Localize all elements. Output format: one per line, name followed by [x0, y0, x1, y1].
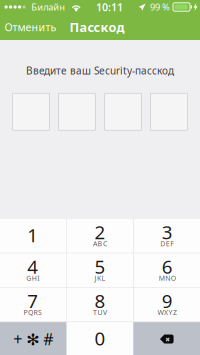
staticText: GHI: [26, 273, 39, 282]
staticText: 9: [162, 288, 173, 313]
staticText: 0: [94, 326, 105, 351]
staticText: 3: [162, 220, 173, 244]
staticText: PQRS: [23, 308, 42, 317]
staticText: 5: [94, 254, 105, 279]
button[interactable]: Отменить: [0, 15, 68, 39]
staticText: 4: [27, 254, 38, 279]
staticText: 10:11: [96, 0, 123, 14]
button[interactable]: 5: [67, 253, 133, 287]
button[interactable]: 7: [0, 288, 66, 322]
button[interactable]: Delete: [133, 322, 200, 355]
staticText: + ✻ #: [13, 328, 53, 350]
staticText: 7: [27, 288, 38, 313]
staticText: 2: [94, 220, 105, 244]
staticText: 6: [162, 254, 173, 279]
button[interactable]: Symbols: [0, 322, 67, 355]
button[interactable]: 2: [67, 219, 133, 253]
staticText: Пасскод: [69, 19, 124, 35]
staticText: 99 %: [150, 1, 170, 13]
button[interactable]: 9: [134, 288, 200, 322]
button[interactable]: 1: [0, 219, 66, 253]
button[interactable]: 4: [0, 253, 66, 287]
staticText: Введите ваш Security-пасскод: [26, 64, 174, 77]
staticText: JKL: [94, 273, 106, 282]
staticText: 1: [27, 223, 38, 247]
staticText: WXYZ: [157, 308, 177, 317]
staticText: Билайн: [31, 1, 65, 13]
button[interactable]: 3: [134, 219, 200, 253]
button[interactable]: 0: [67, 322, 133, 355]
staticText: DEF: [160, 239, 174, 248]
staticText: 8: [94, 288, 105, 313]
staticText: TUV: [93, 308, 107, 317]
button[interactable]: 6: [134, 253, 200, 287]
staticText: ABC: [93, 239, 107, 248]
button[interactable]: 8: [67, 288, 133, 322]
staticText: MNO: [159, 273, 176, 282]
staticText: Отменить: [4, 20, 56, 34]
